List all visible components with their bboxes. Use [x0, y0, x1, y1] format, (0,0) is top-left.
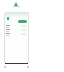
button[interactable] — [18, 20, 27, 23]
other: Logo — [14, 2, 18, 6]
other: App icon — [7, 17, 9, 20]
button[interactable] — [5, 24, 28, 28]
button[interactable] — [5, 28, 28, 32]
button[interactable] — [5, 32, 28, 36]
